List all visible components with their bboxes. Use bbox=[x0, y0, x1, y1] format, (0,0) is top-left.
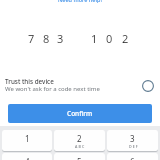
staticText: Confirm bbox=[67, 109, 93, 118]
staticText: 3 bbox=[130, 133, 135, 144]
staticText: DEF bbox=[129, 144, 139, 149]
staticText: 8 bbox=[43, 31, 50, 46]
staticText: 2 bbox=[122, 31, 129, 46]
staticText: 6 bbox=[130, 156, 135, 160]
staticText: 0 bbox=[106, 31, 113, 46]
button[interactable]: Trust this device bbox=[0, 72, 160, 96]
staticText: 1 bbox=[91, 31, 98, 46]
staticText: 2 bbox=[77, 133, 82, 144]
button[interactable]: 1 bbox=[2, 130, 52, 151]
staticText: 5 bbox=[77, 156, 82, 160]
button[interactable]: Need more help? bbox=[0, 0, 160, 8]
staticText: 3 bbox=[57, 31, 64, 46]
other: Trust this device bbox=[142, 80, 154, 92]
staticText: ABC bbox=[75, 144, 86, 149]
staticText: 1 bbox=[25, 133, 30, 144]
button[interactable]: 6 bbox=[107, 153, 158, 160]
button[interactable]: 2 bbox=[54, 130, 105, 151]
staticText: Trust this device bbox=[5, 77, 54, 86]
staticText: Need more help? bbox=[58, 0, 103, 3]
staticText: 4 bbox=[25, 156, 30, 160]
button[interactable]: Confirm bbox=[8, 104, 152, 123]
button[interactable]: 4 bbox=[2, 153, 52, 160]
staticText: We won't ask for a code next time bbox=[5, 85, 100, 93]
button[interactable]: 3 bbox=[107, 130, 158, 151]
button[interactable]: 5 bbox=[54, 153, 105, 160]
staticText: 7 bbox=[28, 31, 35, 46]
